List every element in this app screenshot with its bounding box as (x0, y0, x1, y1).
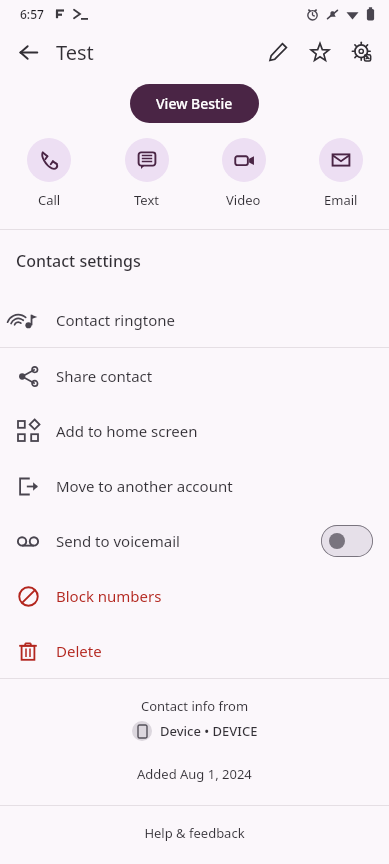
button[interactable]: Edit contact (257, 31, 299, 73)
button[interactable]: Back (8, 32, 48, 72)
staticText: Contact ringtone (56, 310, 373, 330)
staticText: View Bestie (156, 94, 233, 113)
staticText: Call (38, 191, 61, 209)
button[interactable]: Help & feedback (0, 806, 389, 860)
button[interactable]: Call (0, 136, 98, 211)
button[interactable]: Email (292, 136, 389, 211)
button[interactable]: Add to home screen (0, 403, 389, 458)
button[interactable]: Text (98, 136, 195, 211)
staticText: Move to another account (56, 476, 373, 496)
staticText: Add to home screen (56, 421, 373, 441)
staticText: 6:57 (20, 6, 44, 22)
button[interactable]: Contact ringtone (0, 292, 389, 347)
staticText: Share contact (56, 366, 373, 386)
staticText: Device • DEVICE (160, 722, 258, 740)
button[interactable]: Video (195, 136, 292, 211)
button[interactable]: View Bestie (130, 84, 259, 123)
staticText: Added Aug 1, 2024 (137, 765, 252, 783)
staticText: Send to voicemail (56, 531, 321, 551)
button[interactable]: Send to voicemail (0, 513, 389, 568)
button[interactable]: Share contact (0, 348, 389, 403)
button[interactable]: Block numbers (0, 568, 389, 623)
staticText: Help & feedback (144, 824, 245, 842)
staticText: Contact info from (141, 697, 249, 715)
button[interactable]: Add to favorites (299, 31, 341, 73)
staticText: Text (134, 191, 159, 209)
staticText: Video (226, 191, 261, 209)
button[interactable]: Settings (341, 31, 383, 73)
button[interactable]: Send to voicemail toggle (321, 525, 373, 557)
staticText: Contact settings (16, 250, 141, 272)
staticText: Delete (56, 641, 373, 661)
button[interactable]: Move to another account (0, 458, 389, 513)
button[interactable]: Delete (0, 623, 389, 678)
staticText: Test (56, 39, 94, 66)
staticText: Block numbers (56, 586, 373, 606)
staticText: Email (324, 191, 358, 209)
